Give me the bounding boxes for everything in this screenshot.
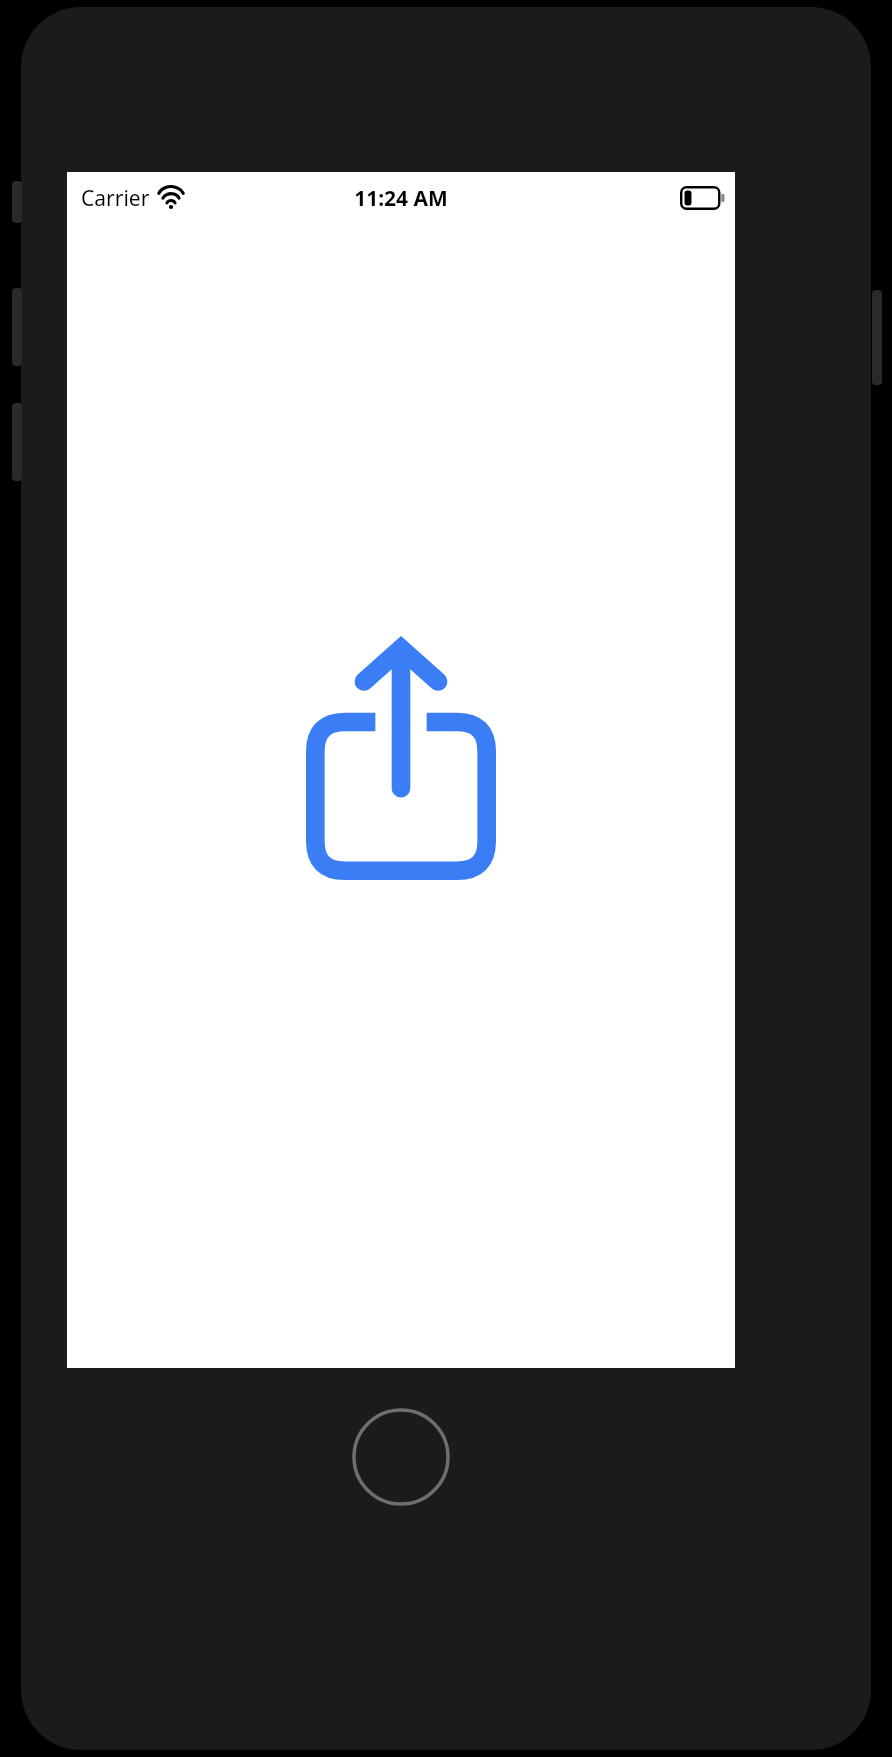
button[interactable]: Share [306, 635, 496, 880]
staticText: Carrier [81, 184, 150, 213]
button[interactable]: Home [352, 1408, 450, 1506]
staticText: 11:24 AM [354, 184, 448, 213]
